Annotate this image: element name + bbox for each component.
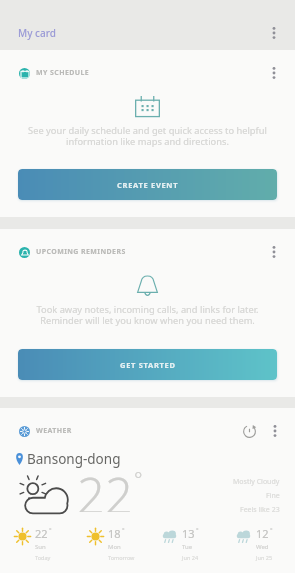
button[interactable]: 12: [235, 523, 295, 558]
staticText: °: [49, 526, 52, 534]
staticText: °: [270, 526, 273, 534]
staticText: UPCOMING REMINDERS: [36, 247, 126, 257]
staticText: 13: [182, 526, 195, 541]
staticText: Fine: [266, 491, 280, 501]
staticText: Bansong-dong: [27, 450, 121, 468]
staticText: Sun: [35, 543, 46, 551]
staticText: MY SCHEDULE: [36, 68, 90, 78]
staticText: 22: [77, 462, 133, 512]
button[interactable]: Bansong-dong: [15, 450, 295, 468]
button[interactable]: More options: [261, 60, 287, 86]
staticText: Took away notes, incoming calls, and lin…: [12, 303, 283, 326]
staticText: WEATHER: [36, 426, 72, 436]
button[interactable]: 22: [14, 523, 73, 558]
button[interactable]: GET STARTED: [18, 349, 277, 380]
staticText: See your daily schedule and get quick ac…: [12, 124, 283, 147]
staticText: Tomorrow: [108, 554, 135, 561]
staticText: GET STARTED: [120, 360, 176, 370]
button[interactable]: Refresh: [236, 418, 262, 444]
button[interactable]: More options: [261, 239, 287, 265]
staticText: 12: [256, 526, 269, 541]
staticText: Jun 24: [182, 554, 199, 561]
staticText: Today: [35, 554, 51, 561]
button[interactable]: More options: [262, 418, 288, 444]
staticText: Wed: [256, 543, 269, 551]
staticText: Tue: [182, 543, 193, 551]
staticText: °: [122, 526, 125, 534]
button[interactable]: 18: [87, 523, 147, 558]
staticText: 18: [108, 526, 121, 541]
button[interactable]: CREATE EVENT: [18, 169, 277, 200]
staticText: My card: [18, 26, 56, 40]
staticText: °: [196, 526, 199, 534]
staticText: CREATE EVENT: [117, 180, 179, 190]
button[interactable]: 13: [161, 523, 221, 558]
staticText: °: [134, 466, 143, 493]
staticText: Mostly Cloudy: [233, 477, 280, 487]
staticText: Mon: [108, 543, 121, 551]
staticText: Feels like 23: [240, 505, 280, 515]
button[interactable]: More options: [261, 20, 287, 46]
staticText: 22: [35, 526, 48, 541]
staticText: Jun 25: [256, 554, 273, 561]
